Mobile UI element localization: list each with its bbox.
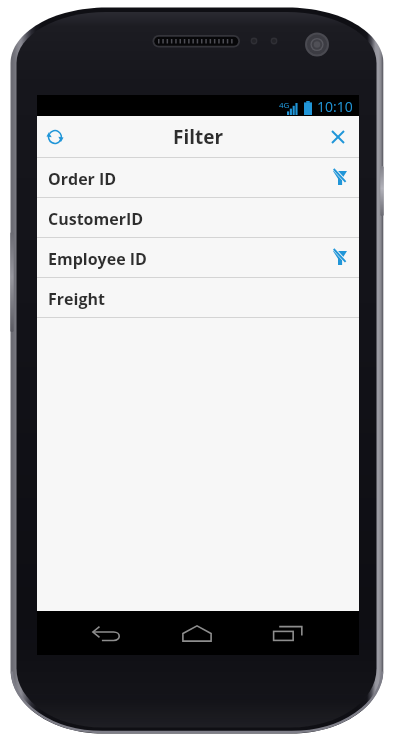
button[interactable]: Clear filter for Order ID (321, 158, 359, 197)
staticText: Order ID (48, 168, 321, 190)
button[interactable]: CustomerID (37, 198, 359, 237)
button[interactable]: Back (84, 611, 130, 655)
button[interactable]: Order ID (37, 158, 359, 197)
staticText: Filter (173, 124, 224, 150)
staticText: Freight (48, 288, 359, 310)
staticText: 4G (279, 99, 290, 110)
button[interactable]: Employee ID (37, 238, 359, 277)
staticText: 10:10 (317, 97, 353, 116)
button[interactable]: Clear filter for Employee ID (321, 238, 359, 277)
button[interactable]: Close (317, 116, 359, 157)
button[interactable]: Freight (37, 278, 359, 317)
staticText: CustomerID (48, 208, 359, 230)
button[interactable]: Reset filters (37, 116, 73, 157)
button[interactable]: Recent apps (265, 611, 311, 655)
staticText: Employee ID (48, 248, 321, 270)
button[interactable]: Home (174, 611, 220, 655)
